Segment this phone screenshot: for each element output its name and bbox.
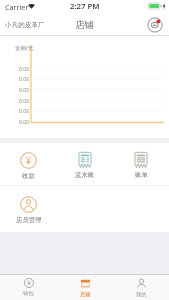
button[interactable]: 钱包 bbox=[0, 275, 57, 300]
staticText: 0.00 bbox=[0, 76, 29, 83]
staticText: 收款 bbox=[22, 172, 35, 180]
staticText: 店铺 bbox=[80, 291, 91, 298]
staticText: 0.00 bbox=[0, 108, 29, 115]
button[interactable]: 收款 bbox=[0, 152, 57, 182]
staticText: Carrier bbox=[5, 2, 29, 12]
button[interactable]: 我的 bbox=[113, 275, 169, 300]
staticText: 0.00 bbox=[0, 87, 29, 94]
staticText: 店员管理 bbox=[16, 216, 42, 224]
button[interactable]: 店铺 bbox=[57, 275, 113, 300]
button[interactable]: 流水账 bbox=[57, 152, 113, 182]
staticText: 账单 bbox=[135, 171, 148, 179]
button[interactable]: 店员管理 bbox=[0, 196, 57, 226]
button[interactable]: 账单 bbox=[113, 152, 169, 182]
staticText: 钱包 bbox=[23, 290, 34, 297]
staticText: 店铺 bbox=[75, 19, 94, 31]
staticText: 金额/元 bbox=[15, 44, 34, 51]
staticText: 0.00 bbox=[0, 98, 29, 105]
button[interactable]: Messages bbox=[147, 17, 163, 33]
staticText: 2:27 PM bbox=[70, 1, 100, 12]
staticText: 我的 bbox=[136, 291, 147, 298]
staticText: 小凡的皮革厂 bbox=[5, 21, 45, 29]
staticText: 0.00 bbox=[0, 119, 29, 126]
staticText: 流水账 bbox=[75, 171, 95, 179]
staticText: 0.00 bbox=[0, 66, 29, 73]
